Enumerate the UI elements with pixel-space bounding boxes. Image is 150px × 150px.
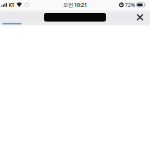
button[interactable]: Address	[44, 13, 106, 22]
staticText: KT	[8, 1, 14, 8]
button[interactable]: Close	[133, 12, 147, 23]
staticText: 72%	[125, 1, 135, 8]
staticText: 오전 10:21	[63, 1, 87, 8]
